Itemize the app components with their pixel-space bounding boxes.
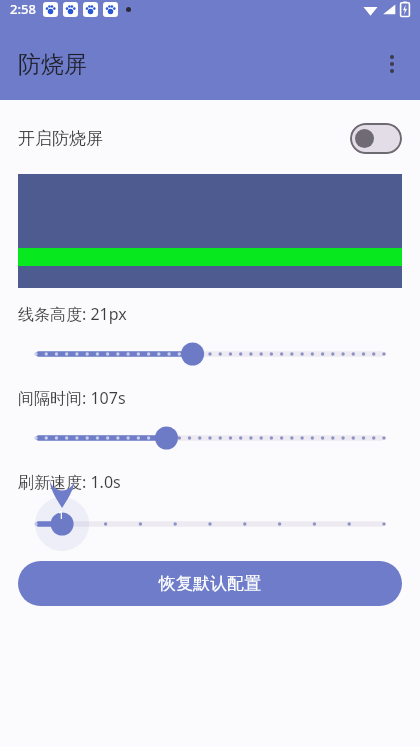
button[interactable]: 恢复默认配置: [18, 561, 402, 606]
button[interactable]: More options: [372, 44, 412, 84]
button[interactable]: [0, 421, 420, 455]
staticText: 防烧屏: [18, 50, 87, 79]
staticText: 1: [58, 508, 64, 522]
button[interactable]: [0, 337, 420, 371]
button[interactable]: 1: [0, 507, 420, 541]
staticText: 刷新速度: 1.0s: [18, 471, 121, 493]
staticText: 2:58: [10, 0, 36, 18]
staticText: 间隔时间: 107s: [18, 387, 126, 409]
staticText: 开启防烧屏: [18, 128, 103, 149]
button[interactable]: 开启防烧屏: [0, 114, 420, 162]
staticText: 线条高度: 21px: [18, 303, 127, 325]
staticText: 恢复默认配置: [159, 573, 261, 594]
